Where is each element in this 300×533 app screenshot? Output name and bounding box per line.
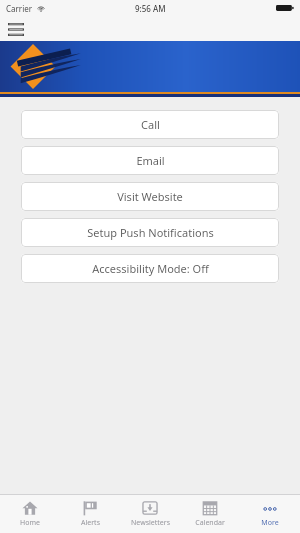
staticText: Alerts: [81, 518, 100, 528]
button[interactable]: Alerts: [60, 495, 120, 533]
button[interactable]: Menu: [4, 17, 28, 41]
button[interactable]: More: [240, 495, 300, 533]
staticText: 9:56 AM: [135, 3, 166, 14]
button[interactable]: Calendar: [180, 495, 240, 533]
staticText: Carrier: [6, 3, 33, 14]
staticText: Email: [136, 153, 165, 168]
button[interactable]: Home: [0, 495, 60, 533]
button[interactable]: Visit Website: [21, 182, 279, 211]
staticText: Accessibility Mode: Off: [92, 261, 209, 276]
staticText: Call: [141, 117, 160, 132]
staticText: Calendar: [195, 518, 225, 528]
button[interactable]: Setup Push Notifications: [21, 218, 279, 247]
staticText: Home: [20, 518, 40, 528]
staticText: Newsletters: [131, 518, 170, 528]
staticText: Visit Website: [117, 189, 183, 204]
button[interactable]: Newsletters: [120, 495, 180, 533]
button[interactable]: Call: [21, 110, 279, 139]
staticText: Setup Push Notifications: [87, 225, 214, 240]
button[interactable]: Accessibility Mode: Off: [21, 254, 279, 283]
staticText: More: [261, 518, 279, 528]
button[interactable]: Email: [21, 146, 279, 175]
